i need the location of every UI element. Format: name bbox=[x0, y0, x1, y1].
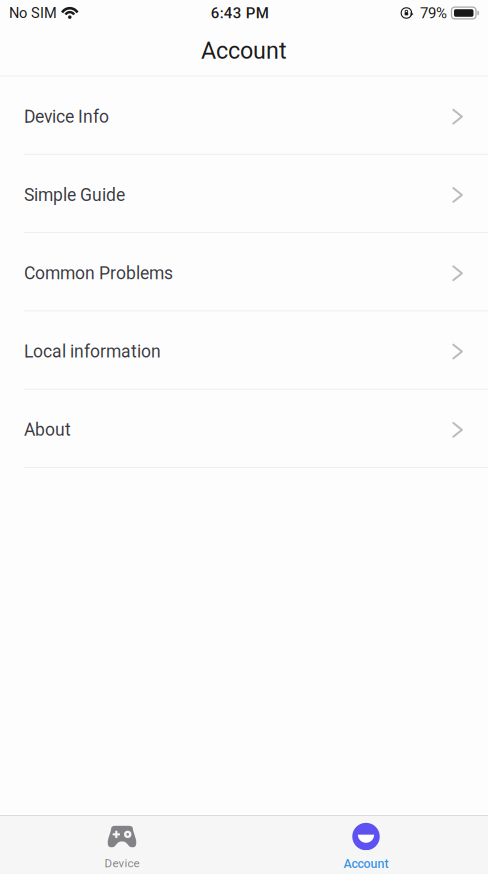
staticText: About bbox=[24, 420, 71, 440]
staticText: Account bbox=[343, 856, 388, 871]
staticText: 6:43 PM bbox=[211, 4, 269, 22]
staticText: 79% bbox=[420, 4, 447, 22]
staticText: Account bbox=[201, 37, 287, 64]
staticText: Device Info bbox=[24, 106, 109, 127]
button[interactable]: Device Info bbox=[0, 76, 488, 155]
staticText: Local information bbox=[24, 341, 161, 362]
button[interactable]: Common Problems bbox=[0, 233, 488, 311]
button[interactable]: Device bbox=[0, 816, 244, 874]
button[interactable]: Simple Guide bbox=[0, 155, 488, 233]
button[interactable]: Account bbox=[244, 816, 488, 874]
button[interactable]: About bbox=[0, 390, 488, 468]
staticText: Device bbox=[104, 856, 139, 870]
staticText: No SIM bbox=[9, 4, 57, 21]
button[interactable]: Local information bbox=[0, 311, 488, 390]
staticText: Common Problems bbox=[24, 263, 173, 283]
staticText: Simple Guide bbox=[24, 185, 125, 205]
